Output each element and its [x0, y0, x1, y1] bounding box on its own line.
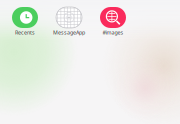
staticText: #images	[102, 29, 123, 36]
staticText: MessageApp	[53, 29, 85, 36]
button[interactable]: MessageApp	[47, 7, 91, 36]
button[interactable]: Recents	[3, 7, 47, 36]
button[interactable]: #images	[91, 7, 135, 36]
staticText: Recents	[15, 29, 35, 36]
